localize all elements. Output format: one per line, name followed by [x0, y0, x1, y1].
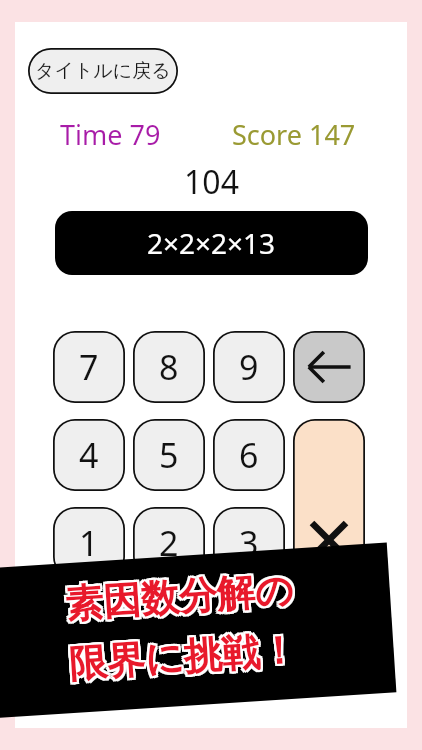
staticText: 限界に挑戦！ [67, 624, 299, 686]
staticText: 限界に挑戦！ [67, 626, 299, 688]
staticText: 限界に挑戦！ [65, 628, 297, 690]
staticText: 5 [159, 432, 179, 478]
staticText: 限界に挑戦！ [69, 623, 301, 686]
staticText: 7 [79, 344, 99, 390]
staticText: 素因数分解の [61, 564, 293, 626]
button[interactable]: 8 [133, 331, 205, 403]
button[interactable]: 5 [133, 419, 205, 491]
button[interactable]: 1 [53, 507, 125, 579]
button[interactable]: 2 [133, 507, 205, 579]
staticText: 6 [239, 432, 259, 478]
staticText: 素因数分解の [65, 564, 297, 626]
staticText: 素因数分解の [61, 566, 293, 628]
staticText: 素因数分解の [64, 568, 295, 630]
button[interactable]: 4 [53, 419, 125, 491]
staticText: 3 [239, 520, 259, 566]
staticText: 素因数分解の [65, 566, 297, 628]
staticText: 2×2×2×13 [147, 224, 276, 262]
staticText: 素因数分解の [66, 568, 297, 630]
staticText: 4 [79, 432, 99, 478]
staticText: 限界に挑戦！ [67, 628, 299, 690]
staticText: 素因数分解の [62, 568, 293, 630]
button[interactable]: 7 [53, 331, 125, 403]
staticText: 素因数分解の [63, 564, 295, 626]
button[interactable]: 3 [213, 507, 285, 579]
button[interactable]: Backspace [293, 331, 365, 403]
staticText: 104 [184, 160, 239, 202]
button[interactable]: タイトルに戻る [28, 48, 178, 94]
staticText: 9 [239, 344, 259, 390]
button[interactable]: 6 [213, 419, 285, 491]
staticText: 素因数分解の [63, 566, 295, 628]
button[interactable]: 9 [213, 331, 285, 403]
staticText: 8 [159, 344, 179, 390]
staticText: 限界に挑戦！ [69, 625, 301, 688]
staticText: 限界に挑戦！ [65, 624, 297, 686]
staticText: Score 147 [232, 116, 356, 150]
staticText: タイトルに戻る [35, 59, 171, 83]
button[interactable]: Multiply [293, 419, 365, 579]
staticText: 2 [159, 520, 179, 566]
staticText: 1 [79, 520, 99, 566]
staticText: Time 79 [60, 116, 161, 150]
staticText: 限界に挑戦！ [69, 627, 301, 690]
staticText: 限界に挑戦！ [65, 626, 297, 688]
